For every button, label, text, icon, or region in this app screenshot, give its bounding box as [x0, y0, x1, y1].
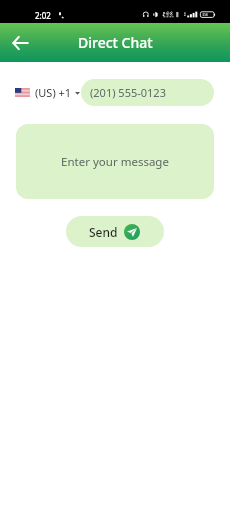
- staticText: Send: [89, 224, 118, 240]
- staticText: (201) 555-0123: [90, 85, 166, 100]
- staticText: Enter your message: [61, 154, 169, 170]
- staticText: (US) +1: [35, 85, 72, 100]
- button[interactable]: Enter your message: [16, 124, 214, 199]
- button[interactable]: Back: [6, 29, 34, 57]
- button[interactable]: Send: [66, 216, 164, 247]
- button[interactable]: (201) 555-0123: [81, 79, 214, 106]
- button[interactable]: (US) +1: [15, 81, 80, 104]
- staticText: Direct Chat: [78, 33, 153, 52]
- staticText: 2:02: [35, 10, 51, 21]
